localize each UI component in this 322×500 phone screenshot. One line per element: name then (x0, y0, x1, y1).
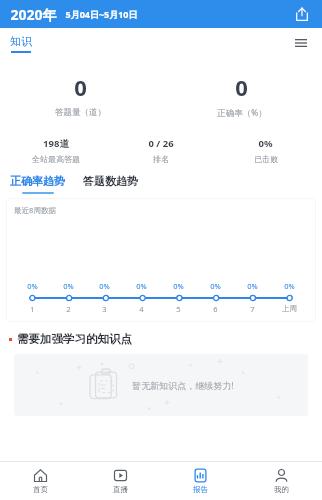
staticText: 0% (258, 137, 273, 150)
staticText: 最近8周数据 (14, 205, 56, 215)
staticText: 0% (27, 281, 38, 291)
staticText: 知识 (10, 34, 32, 48)
staticText: 需要加强学习的知识点 (17, 332, 132, 346)
staticText: 已击败 (254, 154, 278, 164)
button[interactable]: 我的 (241, 462, 322, 500)
staticText: 7 (250, 304, 255, 314)
button[interactable]: 正确率趋势 (8, 174, 67, 194)
staticText: 0% (99, 281, 110, 291)
staticText: 2 (66, 304, 71, 314)
other: 我的 (274, 468, 289, 483)
button[interactable]: Share (290, 2, 314, 26)
button[interactable]: 报告 (160, 462, 241, 500)
staticText: 上周 (282, 304, 297, 313)
staticText: 0% (63, 281, 74, 291)
staticText: 答题量（道） (55, 107, 106, 118)
staticText: 2020年 (10, 5, 57, 24)
staticText: 正确率（%） (217, 107, 267, 119)
staticText: 暂无新知识点，继续努力! (132, 379, 234, 391)
staticText: 0 (235, 72, 248, 102)
staticText: 0 / 26 (148, 137, 174, 150)
staticText: 正确率趋势 (10, 174, 65, 188)
staticText: 6 (213, 304, 218, 314)
staticText: 首页 (33, 485, 48, 494)
staticText: 3 (102, 304, 107, 314)
staticText: 排名 (153, 154, 169, 164)
staticText: 0% (210, 281, 221, 291)
staticText: 0% (173, 281, 184, 291)
button[interactable]: 首页 (0, 462, 80, 500)
other: 报告 (193, 468, 208, 483)
other: 直播 (113, 468, 128, 483)
other: 首页 (33, 468, 48, 483)
button[interactable]: 答题数趋势 (81, 174, 140, 188)
button[interactable]: 直播 (80, 462, 160, 500)
staticText: 我的 (274, 485, 289, 494)
staticText: 0% (247, 281, 258, 291)
staticText: 0 (74, 72, 87, 102)
staticText: 答题数趋势 (83, 174, 138, 188)
staticText: 5月04日~5月10日 (65, 8, 138, 20)
staticText: 报告 (193, 485, 208, 494)
staticText: 直播 (113, 485, 128, 494)
staticText: 5 (176, 304, 181, 314)
staticText: 4 (139, 304, 144, 314)
staticText: 0% (136, 281, 147, 291)
button[interactable]: 知识 (10, 34, 32, 53)
staticText: 1 (30, 304, 35, 314)
button[interactable]: Menu (290, 32, 312, 54)
staticText: 0% (284, 281, 295, 291)
staticText: 全站最高答题 (32, 154, 80, 164)
staticText: 198道 (43, 137, 69, 150)
